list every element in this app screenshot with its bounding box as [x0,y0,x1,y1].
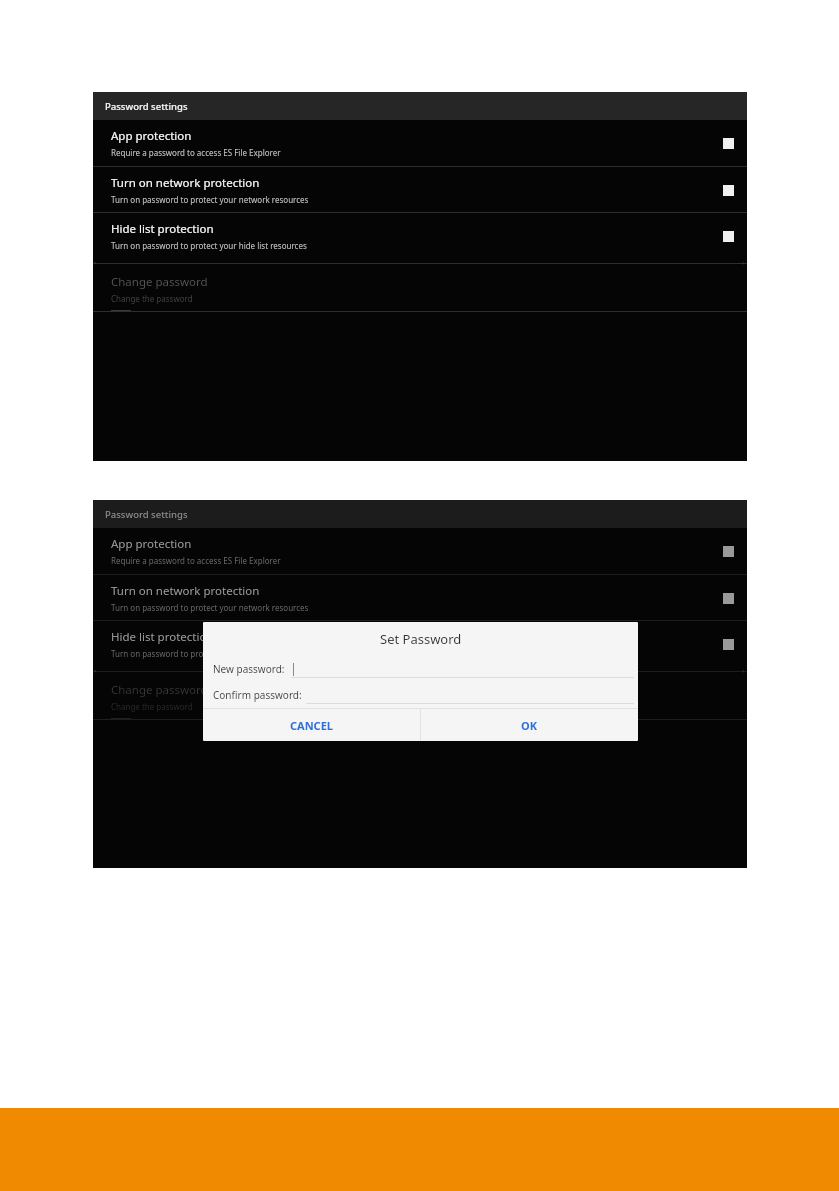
staticText: Change the password [111,293,193,304]
staticText: Turn on password to protect your network… [111,602,309,613]
staticText: Hide list protection [111,221,214,237]
button[interactable]: CANCEL [203,709,420,741]
button[interactable]: Turn on network protection [717,179,739,201]
staticText: Set Password [380,630,462,648]
staticText: Change password [111,274,208,290]
staticText: Turn on password to protect your hide li… [111,648,307,659]
button[interactable]: App protection [93,528,747,574]
staticText: App protection [111,536,192,552]
staticText: Require a password to access ES File Exp… [111,555,281,566]
button[interactable] [291,660,634,678]
staticText: Password settings [105,508,188,521]
staticText: › [94,258,97,268]
button[interactable]: Hide list protection [93,213,747,258]
staticText: Change the password [111,701,193,712]
button[interactable]: Turn on network protection [717,587,739,609]
staticText: Turn on network protection [111,175,260,191]
staticText: ‹ [742,258,745,268]
button[interactable]: App protection [93,120,747,166]
staticText: CANCEL [290,718,333,733]
staticText: OK [521,718,538,733]
button[interactable]: Change password [93,268,747,310]
staticText: › [94,666,97,676]
button[interactable]: Change password [93,676,747,718]
staticText: Turn on network protection [111,583,260,599]
button[interactable]: Hide list protection [93,621,747,666]
staticText: Turn on password to protect your network… [111,194,309,205]
button[interactable]: Turn on network protection [93,575,747,620]
button[interactable]: App protection [717,540,739,562]
staticText: Require a password to access ES File Exp… [111,147,281,158]
button[interactable]: Turn on network protection [93,167,747,212]
staticText: App protection [111,128,192,144]
staticText: Change password [111,682,208,698]
staticText: Hide list protection [111,629,214,645]
button[interactable]: Hide list protection [717,633,739,655]
staticText: New password: [213,662,285,676]
button[interactable]: OK [421,709,638,741]
staticText: ‹ [742,666,745,676]
button[interactable] [306,686,634,704]
button[interactable]: Hide list protection [717,225,739,247]
staticText: Password settings [105,100,188,113]
button[interactable]: App protection [717,132,739,154]
staticText: Confirm password: [213,688,302,702]
staticText: Turn on password to protect your hide li… [111,240,307,251]
